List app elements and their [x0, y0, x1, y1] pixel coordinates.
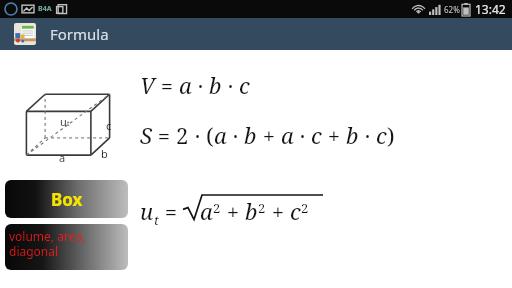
staticText: c — [376, 120, 387, 150]
staticText: + — [322, 120, 346, 150]
staticText: c — [290, 196, 301, 226]
staticText: V — [140, 70, 155, 100]
staticText: · — [222, 70, 239, 100]
staticText: · — [192, 70, 209, 100]
button[interactable]: App icon — [0, 18, 512, 50]
staticText: b — [346, 120, 359, 150]
staticText: + — [221, 196, 245, 226]
staticText: volume, area, diagonal — [9, 228, 86, 259]
staticText: b — [245, 196, 258, 226]
staticText: a — [179, 70, 192, 100]
staticText: 2 — [258, 199, 266, 217]
staticText: a — [59, 150, 66, 165]
staticText: b — [209, 70, 222, 100]
staticText: Formula — [50, 24, 109, 44]
other: App icon — [14, 23, 36, 45]
staticText: u — [140, 196, 154, 226]
staticText: c — [106, 118, 112, 133]
staticText: = — [155, 70, 179, 100]
staticText: 2 — [176, 120, 189, 150]
staticText: + — [266, 196, 290, 226]
staticText: 2 — [301, 199, 309, 217]
button[interactable]: Box — [5, 180, 128, 218]
staticText: = — [159, 196, 183, 226]
staticText: · — [227, 120, 244, 150]
staticText: c — [311, 120, 322, 150]
staticText: ) — [387, 120, 395, 150]
staticText: 13:42 — [475, 1, 506, 17]
staticText: 62% — [444, 4, 460, 15]
staticText: c — [239, 70, 250, 100]
staticText: + — [257, 120, 281, 150]
staticText: a — [200, 196, 213, 226]
staticText: b — [244, 120, 257, 150]
button[interactable]: volume, area, diagonal — [5, 224, 128, 270]
staticText: t — [67, 119, 70, 129]
staticText: · — [294, 120, 311, 150]
staticText: = — [152, 120, 176, 150]
staticText: S — [140, 120, 152, 150]
staticText: · ( — [189, 120, 214, 150]
staticText: b — [101, 146, 108, 161]
staticText: B4A — [38, 4, 52, 14]
staticText: 2 — [213, 199, 221, 217]
staticText: a — [281, 120, 294, 150]
staticText: · — [359, 120, 376, 150]
staticText: t — [154, 211, 159, 229]
staticText: a — [214, 120, 227, 150]
staticText: u — [60, 114, 67, 129]
staticText: Box — [51, 188, 83, 211]
